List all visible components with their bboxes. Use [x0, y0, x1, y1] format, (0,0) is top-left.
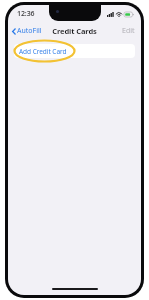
staticText: Add Credit Card	[19, 47, 67, 56]
staticText: Credit Cards	[52, 26, 97, 36]
button[interactable]: Edit	[116, 23, 141, 39]
staticText: 12:36	[17, 9, 35, 19]
button[interactable]: AutoFill	[8, 23, 47, 39]
staticText: AutoFill	[17, 26, 42, 36]
button[interactable]: Add Credit Card	[14, 44, 135, 58]
